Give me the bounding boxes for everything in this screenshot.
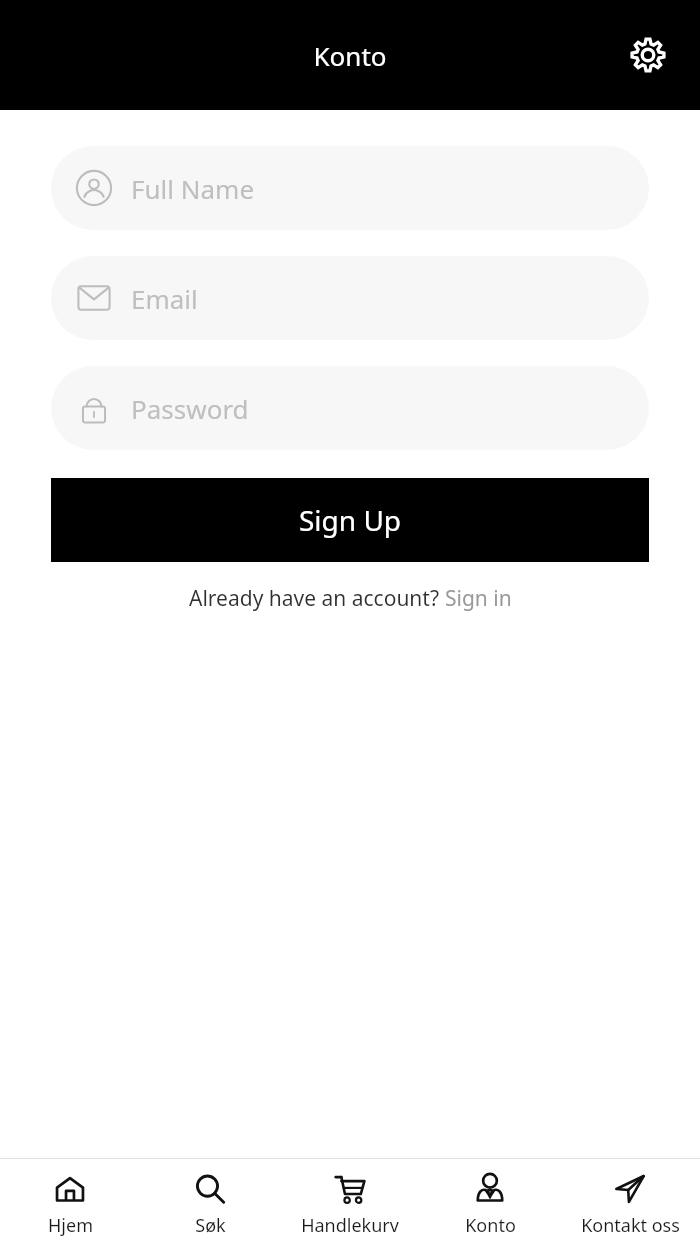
button[interactable]: Settings [622,29,674,81]
staticText: Hjem [48,1213,93,1238]
staticText: Password [131,391,249,426]
staticText: Konto [313,38,387,73]
staticText: Full Name [131,171,255,206]
button[interactable]: Sign in [445,584,512,613]
button[interactable]: Full name [51,146,649,230]
button[interactable]: Password [51,366,649,450]
staticText: Sign in [445,584,512,613]
button[interactable]: Kontakt oss [560,1165,700,1238]
staticText: Sign Up [299,501,402,539]
button[interactable]: Søk [140,1165,280,1238]
staticText: Konto [465,1213,516,1238]
staticText: Kontakt oss [581,1213,680,1238]
button[interactable]: Hjem [0,1165,140,1238]
staticText: Already have an account? [189,584,445,613]
button[interactable]: Sign Up [51,478,649,562]
staticText: Søk [195,1213,226,1238]
staticText: Email [131,281,198,316]
button[interactable]: Email [51,256,649,340]
button[interactable]: Handlekurv [280,1165,420,1238]
button[interactable]: Konto [420,1165,560,1238]
staticText: Handlekurv [301,1213,399,1238]
